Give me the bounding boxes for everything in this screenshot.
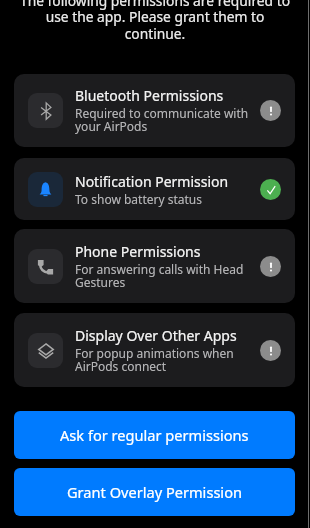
button[interactable]: Not granted [260,256,281,277]
staticText: To show battery status [75,191,202,207]
staticText: Display Over Other Apps [75,326,237,345]
button[interactable]: Ask for regular permissions [14,411,295,459]
staticText: Ask for regular permissions [60,425,249,445]
staticText: Phone Permissions [75,242,201,261]
button[interactable]: Bluetooth Permissions [14,74,295,147]
staticText: Notification Permission [75,172,229,191]
button[interactable]: Phone Permissions [14,229,295,303]
button[interactable]: Notification Permission [14,158,295,220]
button[interactable]: Not granted [260,340,281,361]
staticText: Bluetooth Permissions [75,86,224,105]
staticText: The following permissions are required t… [4,0,306,43]
button[interactable]: Grant Overlay Permission [14,468,295,516]
button[interactable]: Granted [260,179,281,200]
button[interactable]: Not granted [260,100,281,121]
staticText: Grant Overlay Permission [67,482,242,502]
button[interactable]: Display Over Other Apps [14,313,295,387]
staticText: For popup animations when AirPods connec… [75,345,252,375]
staticText: For answering calls with Head Gestures [75,261,252,291]
staticText: Required to communicate with your AirPod… [75,105,252,135]
